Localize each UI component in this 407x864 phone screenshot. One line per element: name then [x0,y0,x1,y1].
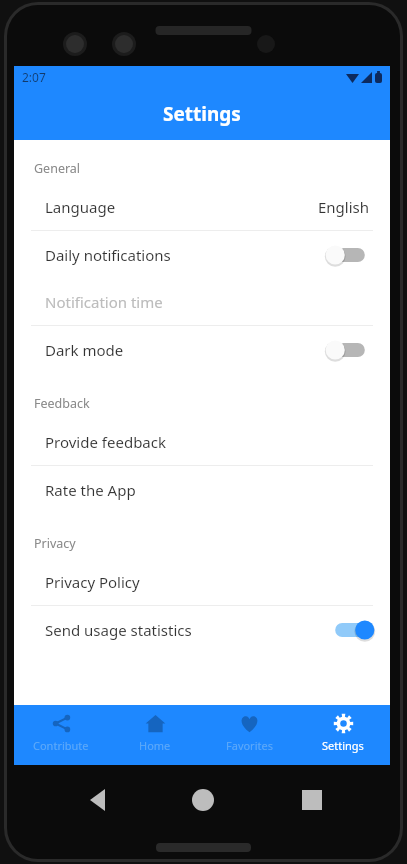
staticText: General [34,160,81,177]
button[interactable]: Send usage statistics [14,606,390,653]
staticText: Daily notifications [45,245,171,265]
staticText: English [318,197,370,217]
button[interactable]: Switch off [330,338,370,362]
staticText: Settings [163,101,241,127]
staticText: Privacy Policy [45,572,140,592]
staticText: Notification time [45,292,163,312]
staticText: Send usage statistics [45,620,192,640]
button[interactable]: Home [108,705,202,765]
staticText: Dark mode [45,340,124,360]
button[interactable]: Settings [296,705,390,765]
staticText: 2:07 [22,69,46,85]
button[interactable]: Provide feedback [14,418,390,465]
button[interactable]: Favorites [202,705,296,765]
staticText: Language [45,197,116,217]
staticText: Contribute [33,738,89,753]
staticText: Rate the App [45,480,136,500]
staticText: Favorites [226,738,273,753]
staticText: Home [139,738,171,753]
button[interactable]: Dark mode [14,326,390,373]
staticText: Settings [322,738,364,753]
button[interactable]: Contribute [14,705,108,765]
button[interactable]: Language [14,183,390,230]
button[interactable]: Rate the App [14,466,390,513]
button[interactable]: Privacy Policy [14,558,390,605]
button[interactable]: Switch off [330,243,370,267]
staticText: Privacy [34,535,76,552]
staticText: Provide feedback [45,432,166,452]
staticText: Feedback [34,395,90,412]
button[interactable]: Daily notifications [14,231,390,278]
button[interactable]: Switch on [330,618,370,642]
button[interactable]: Notification time [14,278,390,325]
